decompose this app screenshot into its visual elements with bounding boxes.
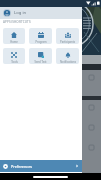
button[interactable]: Participants: [56, 28, 79, 44]
button[interactable]: Program: [29, 28, 52, 44]
button[interactable]: Send Text: [29, 48, 52, 64]
button[interactable]: Home: [3, 28, 25, 44]
staticText: Participants: [60, 40, 75, 44]
staticText: Send Text: [34, 60, 47, 64]
staticText: Home: [10, 40, 18, 44]
button[interactable]: Preferences: [0, 160, 82, 172]
button[interactable]: Notifications: [56, 48, 79, 64]
staticText: Preferences: [11, 164, 33, 169]
button[interactable]: Tools: [3, 48, 25, 64]
staticText: APPS/SHORTCUTS: [3, 20, 31, 24]
staticText: Tools: [11, 60, 18, 64]
staticText: Log in: [14, 10, 27, 16]
button[interactable]: Log in: [0, 7, 82, 19]
staticText: Program: [35, 40, 47, 44]
staticText: Notifications: [60, 60, 76, 64]
